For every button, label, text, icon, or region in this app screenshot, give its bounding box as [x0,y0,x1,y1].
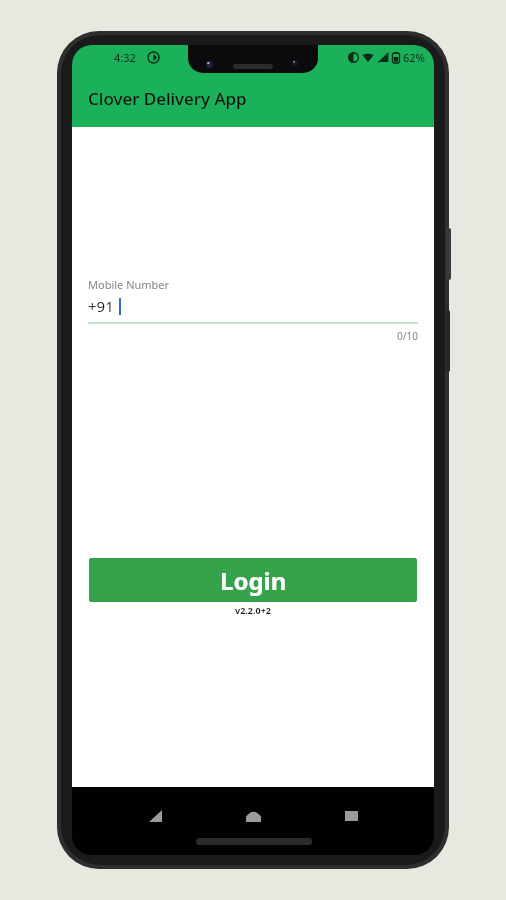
staticText: 0/10 [88,329,418,343]
button[interactable]: Mobile Number [88,277,418,343]
staticText: v2.2.0+2 [235,604,271,616]
button[interactable]: Home [238,801,268,831]
button[interactable]: Back [140,801,170,831]
staticText: Login [220,564,287,597]
staticText: Clover Delivery App [88,87,247,110]
button[interactable]: Login [89,558,417,602]
staticText: 4:32 [114,50,136,65]
staticText: +91 [88,296,114,316]
button[interactable]: Recent apps [336,801,366,831]
staticText: Mobile Number [88,277,170,292]
staticText: 62% [403,50,425,65]
